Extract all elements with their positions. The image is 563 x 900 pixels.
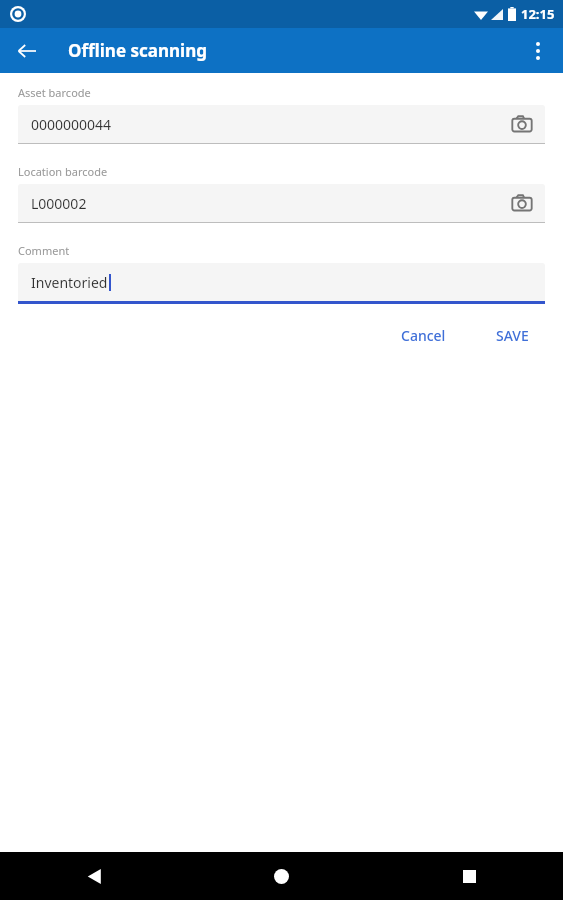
staticText: Offline scanning [68,39,207,62]
staticText: Inventoried [31,273,108,292]
button[interactable]: Home [259,854,303,898]
button[interactable]: Inventoried [18,263,545,301]
staticText: Cancel [401,326,446,345]
button[interactable]: Navigate up [10,34,44,68]
staticText: 12:15 [521,5,555,23]
button[interactable]: More options [521,34,555,68]
button[interactable]: Scan barcode with camera [503,105,541,143]
staticText: SAVE [496,326,529,345]
staticText: Location barcode [18,164,108,179]
button[interactable]: 0000000044 [18,105,545,143]
button[interactable]: Back [72,854,116,898]
button[interactable]: SAVE [482,318,543,353]
staticText: L000002 [31,194,87,213]
staticText: Asset barcode [18,85,91,100]
staticText: 0000000044 [31,115,112,134]
button[interactable]: Cancel [387,318,460,353]
button[interactable]: L000002 [18,184,545,222]
button[interactable]: Recent apps [447,854,491,898]
button[interactable]: Scan barcode with camera [503,184,541,222]
staticText: Comment [18,243,70,258]
